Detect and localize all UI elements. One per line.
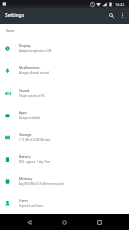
staticText: Adaptive brightness is ON: [19, 49, 52, 53]
button[interactable]: Search: [105, 9, 117, 21]
button[interactable]: Back: [12, 214, 47, 230]
staticText: Notifications: [19, 65, 40, 70]
staticText: Signed in as Owner: [19, 204, 43, 208]
button[interactable]: Notifications: [0, 59, 129, 81]
button[interactable]: Memory: [0, 170, 129, 192]
button[interactable]: Recents: [82, 214, 117, 230]
button[interactable]: Home: [47, 214, 82, 230]
staticText: Apps: [19, 110, 27, 115]
staticText: Settings: [5, 12, 25, 19]
staticText: Avg 869 MB of 2.9 GB memory used: [19, 182, 64, 186]
staticText: Users: [19, 198, 29, 203]
staticText: Battery: [19, 154, 31, 159]
button[interactable]: Sound: [0, 82, 129, 104]
button[interactable]: Storage: [0, 126, 129, 148]
button[interactable]: Users: [0, 192, 129, 214]
staticText: Storage: [19, 132, 32, 137]
staticText: Device: [6, 29, 15, 33]
button[interactable]: Display: [0, 37, 129, 59]
button[interactable]: Apps: [0, 104, 129, 126]
button[interactable]: Battery: [0, 148, 129, 170]
staticText: All apps allowed to send: [19, 71, 49, 75]
staticText: 1.72 GB of 23.98 GB used: [19, 138, 51, 142]
staticText: Memory: [19, 176, 33, 181]
staticText: Ringer volume at 0%: [19, 94, 45, 98]
staticText: Sound: [19, 88, 30, 93]
staticText: 44 apps installed: [19, 116, 40, 120]
button[interactable]: More options: [117, 10, 128, 21]
staticText: Display: [19, 43, 31, 48]
staticText: 14:42: [115, 2, 125, 7]
staticText: 85% - approx. 1 day 3 hrs: [19, 160, 51, 164]
